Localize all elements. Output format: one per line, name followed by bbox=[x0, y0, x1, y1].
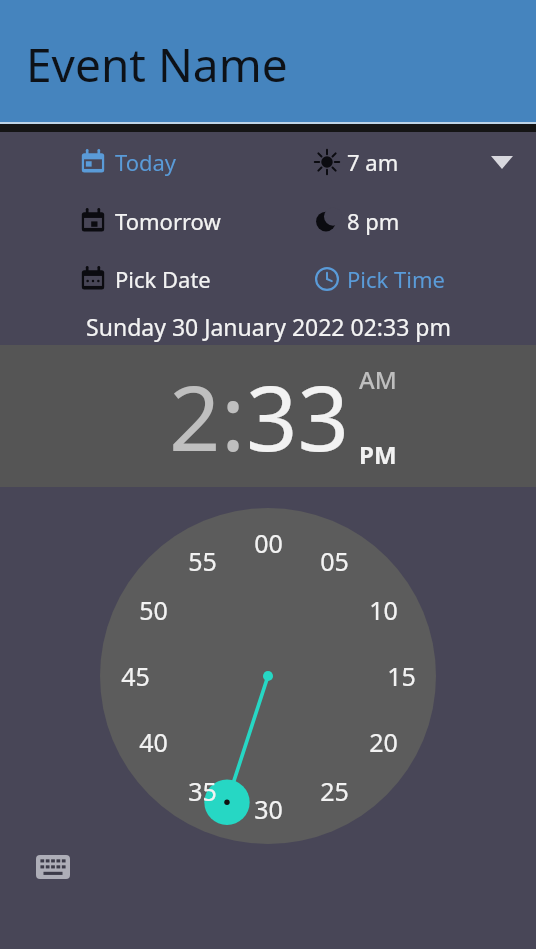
staticText: 10 bbox=[369, 593, 398, 627]
button[interactable]: Pick Time bbox=[314, 264, 445, 294]
staticText: 15 bbox=[387, 659, 416, 693]
staticText: 45 bbox=[121, 659, 150, 693]
button[interactable]: Pick Date bbox=[80, 264, 211, 294]
staticText: Pick Time bbox=[347, 264, 445, 294]
staticText: 05 bbox=[320, 544, 349, 578]
button[interactable]: PM bbox=[359, 438, 397, 471]
staticText: Sunday 30 January 2022 02:33 pm bbox=[86, 311, 451, 342]
button[interactable]: Sunday 30 January 2022 02:33 pm bbox=[0, 307, 536, 345]
staticText: : bbox=[221, 355, 246, 478]
button[interactable]: 7 am bbox=[314, 147, 399, 177]
staticText: Pick Date bbox=[115, 264, 211, 294]
staticText: 55 bbox=[188, 544, 217, 578]
button[interactable]: Minute picker dial bbox=[100, 508, 436, 844]
button[interactable]: 33 bbox=[246, 355, 349, 478]
staticText: 20 bbox=[369, 725, 398, 759]
staticText: Tomorrow bbox=[115, 206, 221, 236]
button[interactable]: 2 bbox=[169, 355, 221, 478]
button[interactable]: Expand options bbox=[484, 144, 520, 180]
button[interactable]: AM bbox=[359, 363, 397, 396]
staticText: 25 bbox=[320, 774, 349, 808]
staticText: 40 bbox=[139, 725, 168, 759]
staticText: 30 bbox=[254, 792, 283, 826]
staticText: Event Name bbox=[26, 33, 288, 96]
staticText: 8 pm bbox=[347, 206, 400, 236]
button[interactable]: Event Name bbox=[0, 0, 536, 122]
staticText: 50 bbox=[139, 593, 168, 627]
button[interactable]: Tomorrow bbox=[80, 206, 221, 236]
staticText: 7 am bbox=[347, 147, 399, 177]
button[interactable]: Today bbox=[80, 147, 177, 177]
staticText: 35 bbox=[188, 774, 217, 808]
staticText: 00 bbox=[254, 526, 283, 560]
button[interactable]: Switch to keyboard input bbox=[33, 852, 73, 882]
staticText: Today bbox=[115, 147, 177, 177]
button[interactable]: 8 pm bbox=[314, 206, 400, 236]
